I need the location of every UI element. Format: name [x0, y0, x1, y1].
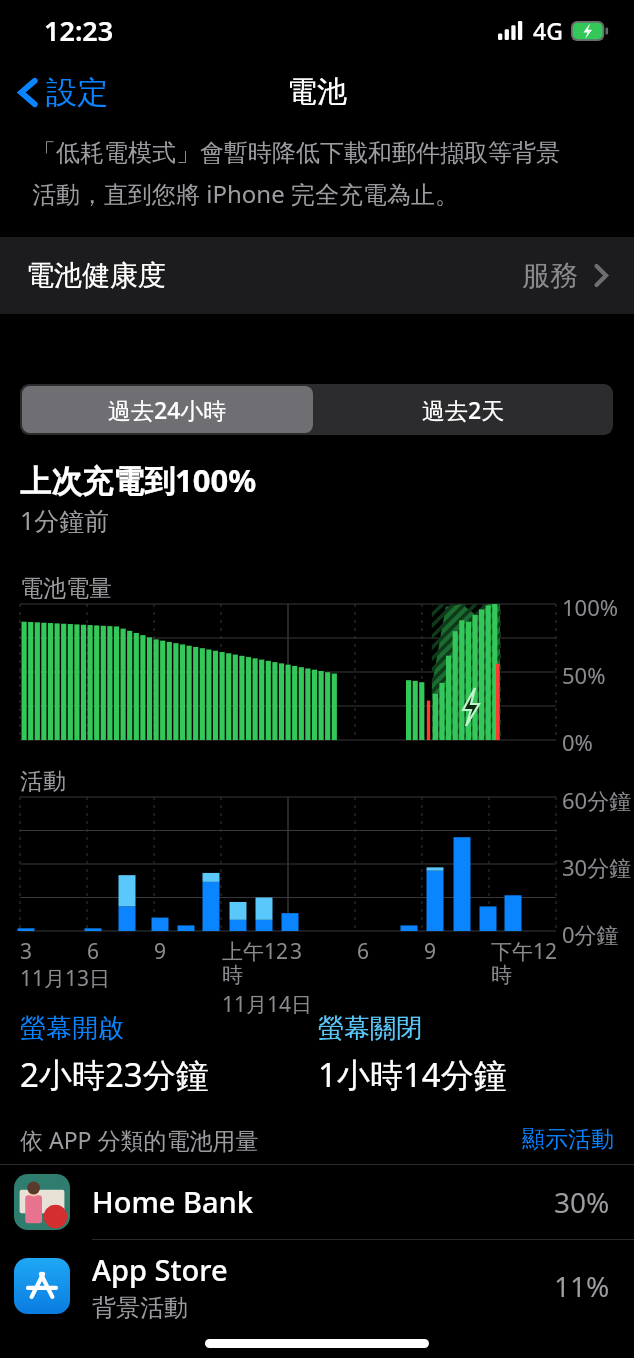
staticText: Home Bank	[92, 1182, 254, 1221]
button[interactable]: App Store	[0, 1242, 634, 1330]
staticText: 9	[424, 937, 437, 966]
staticText: 依 APP 分類的電池用量	[20, 1124, 259, 1155]
button[interactable]: 設定	[12, 65, 114, 120]
button[interactable]: 顯示活動	[522, 1125, 614, 1154]
staticText: 100%	[562, 592, 619, 622]
staticText: 上次充電到100%	[20, 459, 257, 501]
staticText: 服務	[522, 258, 578, 293]
staticText: 時	[222, 962, 243, 988]
staticText: 活動，直到您將 iPhone 完全充電為止。	[32, 177, 459, 210]
staticText: 2小時23分鐘	[20, 1052, 209, 1097]
staticText: 0分鐘	[562, 919, 619, 949]
staticText: 1分鐘前	[20, 503, 110, 537]
staticText: 電池	[287, 73, 347, 111]
staticText: 11%	[554, 1267, 610, 1305]
staticText: 3	[20, 937, 33, 966]
staticText: 過去2天	[422, 394, 505, 425]
staticText: 9	[154, 937, 167, 966]
staticText: 電池健康度	[26, 258, 166, 293]
staticText: 設定	[46, 73, 108, 112]
button[interactable]: 電池健康度	[0, 237, 634, 314]
staticText: 3	[290, 937, 303, 966]
staticText: App Store	[92, 1250, 228, 1289]
staticText: 顯示活動	[522, 1125, 614, 1154]
staticText: 6	[357, 937, 370, 966]
button[interactable]: 過去24小時	[22, 386, 313, 433]
staticText: 「低耗電模式」會暫時降低下載和郵件擷取等背景	[32, 138, 560, 168]
staticText: 背景活動	[92, 1293, 188, 1323]
staticText: 活動	[20, 767, 66, 796]
staticText: 6	[87, 937, 100, 966]
staticText: 電池電量	[20, 574, 112, 603]
staticText: 時	[491, 962, 512, 988]
staticText: 12:23	[44, 12, 114, 49]
staticText: 螢幕開啟	[20, 1012, 124, 1045]
staticText: 11月14日	[222, 990, 313, 1019]
staticText: 下午12	[491, 937, 558, 966]
staticText: 1小時14分鐘	[318, 1052, 507, 1097]
staticText: 30%	[554, 1183, 610, 1221]
staticText: 4G	[533, 15, 563, 46]
staticText: 0%	[562, 727, 593, 757]
button[interactable]: Home Bank	[0, 1166, 634, 1237]
staticText: 螢幕關閉	[318, 1012, 422, 1045]
staticText: 上午12	[222, 937, 289, 966]
staticText: 50%	[562, 660, 606, 690]
staticText: 過去24小時	[108, 394, 227, 425]
button[interactable]: 過去2天	[315, 384, 611, 435]
staticText: 60分鐘	[562, 785, 632, 815]
staticText: 30分鐘	[562, 852, 632, 882]
other: Home indicator	[205, 1339, 429, 1348]
staticText: 11月13日	[20, 964, 111, 993]
